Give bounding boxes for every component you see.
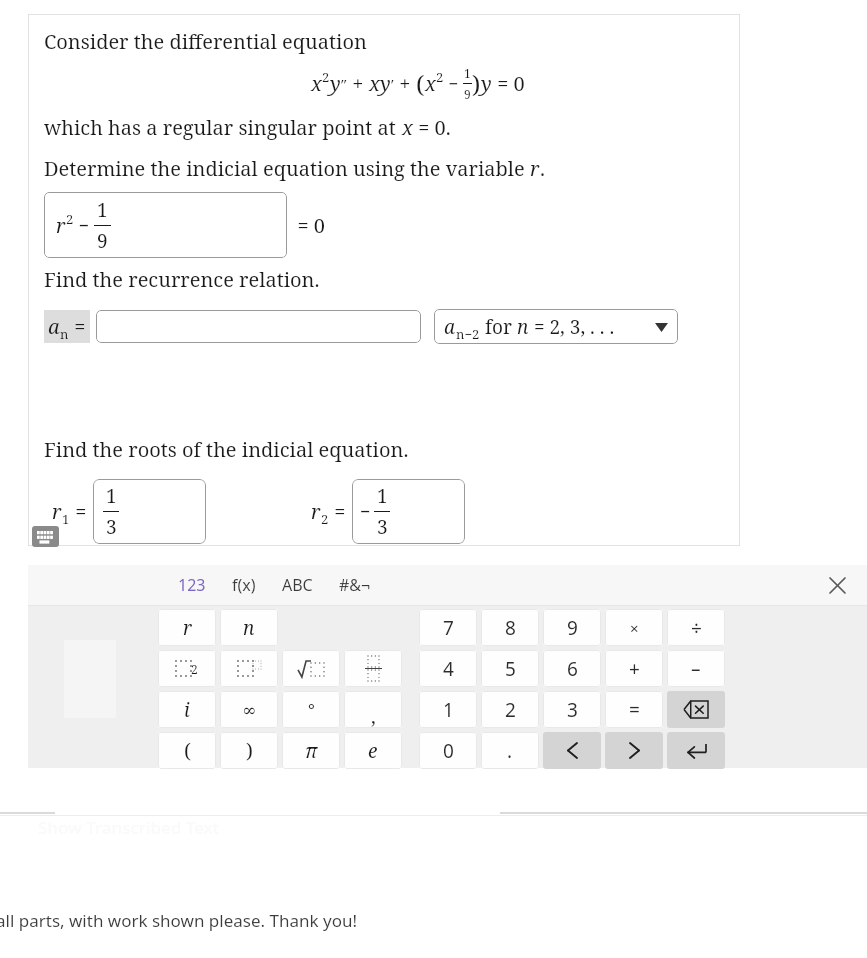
staticText: = (69, 313, 86, 340)
button[interactable]: − (352, 479, 465, 544)
button[interactable]: ) (220, 732, 278, 769)
staticText: i (184, 697, 190, 723)
staticText: y (330, 70, 341, 97)
staticText: 9 (567, 615, 578, 641)
staticText: ) (472, 67, 481, 100)
staticText: 5 (505, 656, 516, 682)
staticText: 0 (443, 738, 454, 764)
staticText: y (481, 70, 492, 97)
staticText: = (329, 498, 346, 525)
staticText: 9 (464, 86, 471, 102)
button[interactable]: r (44, 192, 287, 258)
staticText: 1 (377, 483, 388, 509)
button[interactable]: a (434, 309, 678, 344)
staticText: ( (416, 67, 425, 100)
staticText: = 0 (492, 70, 525, 97)
staticText: 2 (321, 510, 329, 528)
button[interactable]: × (605, 609, 663, 646)
button[interactable]: 1 (419, 691, 477, 728)
button[interactable]: ( (158, 732, 216, 769)
button[interactable]: Move left (543, 732, 601, 769)
button[interactable]: r (158, 609, 216, 646)
button[interactable]: ° (282, 691, 340, 728)
button[interactable]: n (220, 609, 278, 646)
button[interactable]: i (158, 691, 216, 728)
staticText: = 2, 3, . . . (529, 314, 615, 340)
staticText: = (70, 498, 87, 525)
button[interactable]: 7 (419, 609, 477, 646)
button[interactable]: Backspace (667, 691, 725, 728)
staticText: y (380, 70, 391, 97)
staticText: #&¬ (339, 574, 371, 596)
button[interactable]: e (344, 732, 402, 769)
button[interactable]: π (282, 732, 340, 769)
button[interactable]: 123 (178, 565, 206, 605)
button[interactable]: #&¬ (339, 565, 371, 605)
staticText: = (629, 697, 640, 723)
staticText: n (517, 314, 529, 340)
staticText: 2 (436, 68, 444, 86)
button[interactable] (282, 650, 340, 687)
staticText: x (369, 70, 380, 97)
button[interactable]: , (344, 691, 402, 728)
button[interactable] (96, 310, 421, 343)
button[interactable]: 6 (543, 650, 601, 687)
staticText: × (630, 618, 639, 638)
staticText: f(x) (232, 574, 256, 596)
staticText: Consider the differential equation (44, 28, 367, 55)
staticText: ( (184, 737, 191, 764)
button[interactable]: 2 (481, 691, 539, 728)
button[interactable]: ÷ (667, 609, 725, 646)
staticText: ° (308, 698, 315, 721)
staticText: 2 (66, 210, 74, 228)
staticText: 7 (443, 615, 454, 641)
staticText: n (243, 615, 255, 641)
staticText: ∞ (242, 700, 257, 720)
button[interactable]: Close keyboard (823, 571, 851, 599)
staticText: ) (246, 737, 253, 764)
staticText: Find the recurrence relation. (44, 266, 320, 293)
staticText: = 0 (287, 212, 325, 239)
staticText: + (629, 656, 640, 682)
staticText: 2 (191, 661, 198, 677)
staticText: 1 (97, 197, 108, 223)
staticText: + (347, 70, 369, 97)
staticText: 123 (178, 574, 206, 596)
staticText: – (691, 656, 701, 682)
staticText: r (52, 498, 62, 525)
button[interactable]: 1 (93, 479, 206, 544)
button[interactable]: f(x) (232, 565, 256, 605)
button[interactable]: = (605, 691, 663, 728)
staticText: all parts, with work shown please. Thank… (0, 909, 358, 932)
button[interactable]: 4 (419, 650, 477, 687)
button[interactable]: + (605, 650, 663, 687)
staticText: 3 (377, 514, 388, 540)
button[interactable]: ∞ (220, 691, 278, 728)
staticText: e (368, 738, 378, 764)
button[interactable]: ABC (282, 565, 313, 605)
button[interactable]: 0 (419, 732, 477, 769)
staticText: for (480, 314, 517, 340)
button[interactable]: 5 (481, 650, 539, 687)
button[interactable] (344, 650, 402, 687)
staticText: r (311, 498, 321, 525)
staticText: 8 (505, 615, 516, 641)
button[interactable]: Enter (667, 732, 725, 769)
button[interactable]: 8 (481, 609, 539, 646)
button[interactable]: 3 (543, 691, 601, 728)
staticText: Determine the indicial equation using th… (44, 155, 530, 182)
staticText: a (444, 314, 456, 340)
button[interactable]: 2 (158, 650, 216, 687)
staticText: ÷ (691, 615, 702, 641)
button[interactable]: Show keyboard (32, 526, 59, 547)
staticText: 3 (106, 514, 117, 540)
staticText: x (311, 70, 322, 97)
button[interactable]: . (481, 732, 539, 769)
button[interactable]: – (667, 650, 725, 687)
staticText: n (60, 325, 69, 343)
button[interactable]: 9 (543, 609, 601, 646)
button[interactable]: Move right (605, 732, 663, 769)
button[interactable] (220, 650, 278, 687)
staticText: − (360, 499, 371, 524)
staticText: a (48, 313, 60, 340)
